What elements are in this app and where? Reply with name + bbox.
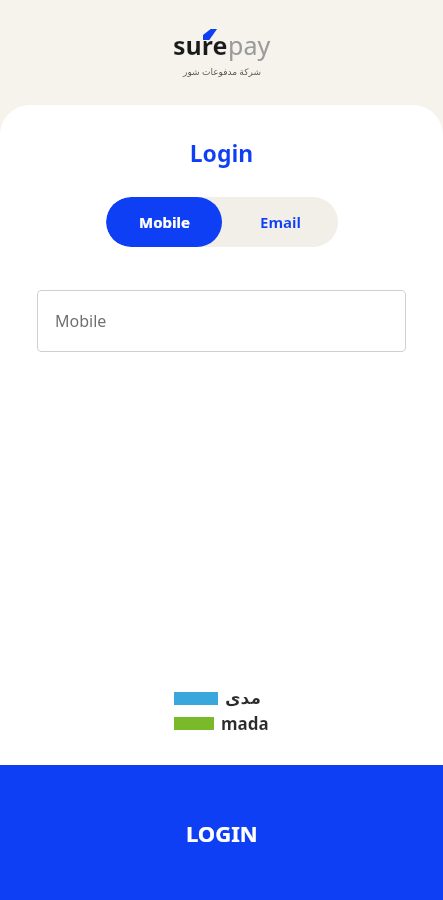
button[interactable]: Mobile: [106, 197, 222, 247]
staticText: Email: [260, 212, 301, 232]
staticText: Mobile: [139, 212, 190, 232]
button[interactable]: Mobile: [37, 290, 406, 352]
button[interactable]: LOGIN: [0, 765, 443, 900]
button[interactable]: Email: [222, 197, 338, 247]
staticText: mada: [221, 712, 269, 735]
staticText: Login: [0, 137, 443, 168]
staticText: sure: [173, 28, 228, 62]
staticText: Mobile: [55, 310, 107, 332]
staticText: مدى: [225, 688, 261, 708]
staticText: شركة مدفوعات شور: [183, 65, 261, 77]
staticText: pay: [228, 28, 271, 62]
staticText: LOGIN: [186, 818, 258, 848]
